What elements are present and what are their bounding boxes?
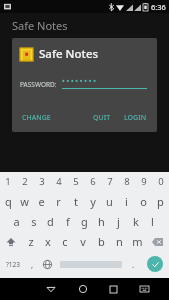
button[interactable]: 1 xyxy=(0,172,16,191)
staticText: 1 xyxy=(5,175,11,188)
staticText: Safe Notes xyxy=(12,18,68,33)
staticText: , xyxy=(31,259,34,270)
button[interactable]: x xyxy=(39,231,56,252)
button[interactable]: n xyxy=(110,231,128,252)
button[interactable]: Back xyxy=(35,278,67,300)
button[interactable]: Done xyxy=(147,256,163,272)
button[interactable]: h xyxy=(93,211,110,231)
button[interactable]: j xyxy=(110,211,127,231)
button[interactable]: k xyxy=(127,211,144,231)
button[interactable]: Keyboard xyxy=(129,278,160,300)
staticText: • • • • • • • • xyxy=(62,77,96,87)
staticText: 4 xyxy=(56,175,62,188)
button[interactable]: d xyxy=(42,211,59,231)
staticText: 9 xyxy=(141,175,147,188)
staticText: u xyxy=(106,194,113,209)
button[interactable]: p xyxy=(152,191,169,211)
button[interactable]: Period xyxy=(126,252,141,276)
staticText: 3 xyxy=(39,175,45,188)
button[interactable]: ?123 xyxy=(0,252,26,276)
button[interactable]: s xyxy=(25,211,42,231)
staticText: q xyxy=(5,194,12,209)
staticText: 0 xyxy=(158,175,164,188)
staticText: CHANGE xyxy=(22,113,51,123)
staticText: 7 xyxy=(107,175,113,188)
staticText: b xyxy=(98,234,105,249)
staticText: 6 xyxy=(90,175,96,188)
button[interactable]: CHANGE xyxy=(20,111,53,125)
button[interactable]: 3 xyxy=(33,172,50,191)
button[interactable]: 4 xyxy=(50,172,67,191)
staticText: . xyxy=(132,259,135,270)
button[interactable]: i xyxy=(118,191,135,211)
staticText: PASSWORD: xyxy=(20,80,57,89)
staticText: d xyxy=(47,214,54,229)
staticText: j xyxy=(117,214,120,229)
staticText: LOGIN xyxy=(124,113,147,123)
button[interactable]: QUIT xyxy=(91,111,113,125)
staticText: h xyxy=(98,214,105,229)
button[interactable]: 7 xyxy=(101,172,118,191)
button[interactable]: Recents xyxy=(98,278,129,300)
staticText: x xyxy=(45,234,51,249)
button[interactable]: c xyxy=(56,231,74,252)
button[interactable]: a xyxy=(8,211,25,231)
staticText: a xyxy=(13,214,20,229)
staticText: m xyxy=(132,234,143,249)
staticText: z xyxy=(28,234,34,249)
button[interactable]: 6 xyxy=(84,172,101,191)
staticText: y xyxy=(90,194,96,209)
button[interactable]: Space xyxy=(56,252,126,276)
staticText: e xyxy=(38,194,45,209)
staticText: w xyxy=(20,194,29,209)
button[interactable]: l xyxy=(144,211,161,231)
staticText: s xyxy=(31,214,37,229)
button[interactable]: t xyxy=(67,191,84,211)
staticText: g xyxy=(81,214,88,229)
button[interactable]: Shift xyxy=(0,231,22,252)
button[interactable]: e xyxy=(33,191,50,211)
button[interactable]: 9 xyxy=(135,172,152,191)
staticText: p xyxy=(157,194,164,209)
button[interactable]: w xyxy=(16,191,33,211)
staticText: n xyxy=(116,234,123,249)
button[interactable]: 0 xyxy=(152,172,169,191)
button[interactable]: g xyxy=(76,211,93,231)
staticText: i xyxy=(125,194,128,209)
staticText: 8 xyxy=(124,175,130,188)
staticText: 2 xyxy=(22,175,28,188)
button[interactable]: f xyxy=(59,211,76,231)
button[interactable]: 5 xyxy=(67,172,84,191)
button[interactable]: y xyxy=(84,191,101,211)
staticText: QUIT xyxy=(93,113,111,123)
button[interactable]: o xyxy=(135,191,152,211)
staticText: c xyxy=(62,234,68,249)
button[interactable]: v xyxy=(74,231,92,252)
button[interactable]: u xyxy=(101,191,118,211)
button[interactable]: Change language xyxy=(39,252,56,276)
staticText: 6:36 xyxy=(151,2,166,12)
staticText: f xyxy=(66,214,70,229)
staticText: v xyxy=(80,234,86,249)
staticText: Safe Notes xyxy=(39,46,99,62)
staticText: r xyxy=(56,194,61,209)
button[interactable]: z xyxy=(22,231,39,252)
staticText: o xyxy=(140,194,147,209)
staticText: t xyxy=(74,194,78,209)
button[interactable]: Home xyxy=(67,278,98,300)
button[interactable]: b xyxy=(92,231,110,252)
button[interactable]: LOGIN xyxy=(122,111,149,125)
button[interactable]: 8 xyxy=(118,172,135,191)
button[interactable]: 2 xyxy=(16,172,33,191)
button[interactable]: Comma xyxy=(26,252,39,276)
staticText: ?123 xyxy=(6,260,20,269)
button[interactable]: q xyxy=(0,191,16,211)
staticText: k xyxy=(133,214,139,229)
staticText: l xyxy=(151,214,154,229)
button[interactable]: m xyxy=(128,231,146,252)
button[interactable]: Backspace xyxy=(146,231,169,252)
staticText: 5 xyxy=(73,175,79,188)
button[interactable]: r xyxy=(50,191,67,211)
